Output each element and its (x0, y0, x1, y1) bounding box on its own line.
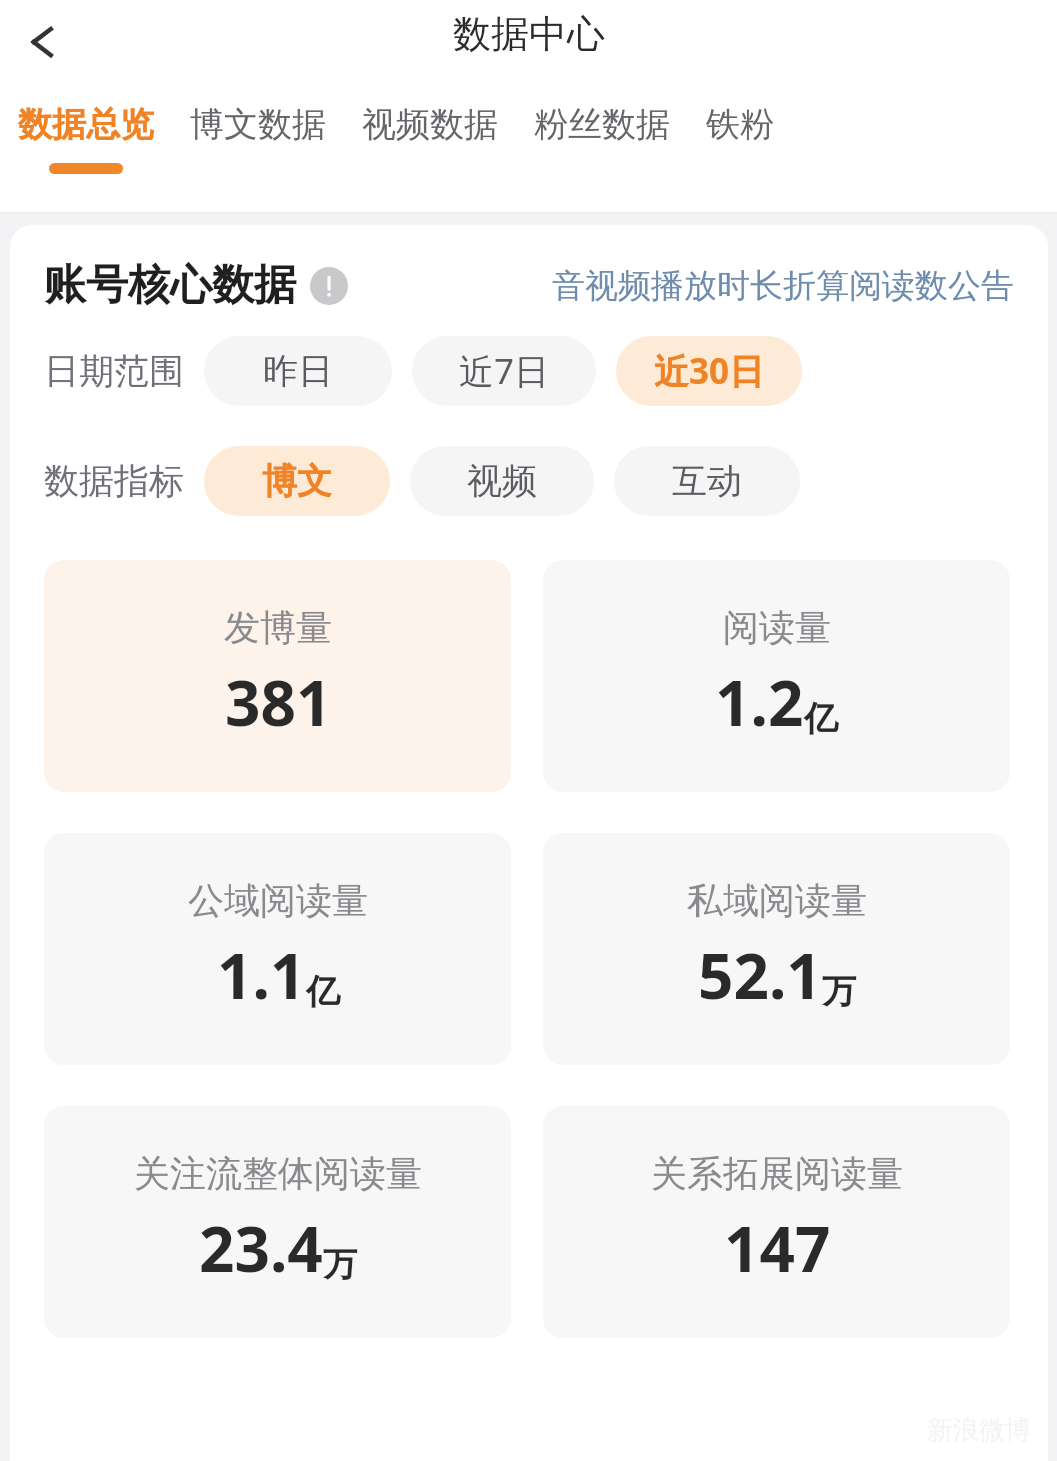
staticText: 音视频播放时长折算阅读数公告 (552, 265, 1014, 307)
staticText: 1.2 (715, 660, 804, 744)
button[interactable]: 粉丝数据 (534, 76, 670, 163)
button[interactable]: 博文数据 (190, 76, 326, 163)
staticText: 近7日 (459, 347, 550, 395)
button[interactable]: 视频 (410, 446, 594, 516)
button[interactable]: 近30日 (616, 336, 802, 406)
staticText: 近30日 (654, 347, 765, 395)
button[interactable]: 私域阅读量 (543, 833, 1010, 1065)
staticText: 粉丝数据 (534, 103, 670, 146)
button[interactable]: 昨日 (204, 336, 392, 406)
staticText: 147 (724, 1206, 831, 1290)
staticText: 账号核心数据 (44, 259, 296, 312)
staticText: 发博量 (224, 605, 332, 650)
button[interactable]: 发博量 (44, 560, 511, 792)
staticText: 亿 (306, 970, 340, 1013)
button[interactable]: 视频数据 (362, 76, 498, 163)
staticText: 互动 (672, 459, 742, 503)
staticText: 数据指标 (44, 459, 184, 503)
staticText: 381 (225, 660, 332, 744)
button[interactable]: 关注流整体阅读量 (44, 1106, 511, 1338)
button[interactable]: 音视频播放时长折算阅读数公告 (552, 265, 1014, 307)
staticText: 数据总览 (18, 103, 154, 146)
button[interactable]: 公域阅读量 (44, 833, 511, 1065)
staticText: 1.1 (217, 933, 306, 1017)
button[interactable]: 数据总览 (18, 76, 154, 174)
button[interactable]: 近7日 (412, 336, 596, 406)
staticText: 52.1 (698, 933, 822, 1017)
staticText: 关注流整体阅读量 (134, 1151, 422, 1196)
button[interactable]: Back (8, 7, 70, 69)
button[interactable]: 铁粉 (706, 76, 774, 163)
staticText: 关系拓展阅读量 (651, 1151, 903, 1196)
staticText: 视频数据 (362, 103, 498, 146)
button[interactable]: 博文 (204, 446, 390, 516)
staticText: 博文 (262, 459, 332, 503)
staticText: 公域阅读量 (188, 878, 368, 923)
staticText: 数据中心 (453, 10, 605, 58)
staticText: 万 (323, 1243, 357, 1286)
staticText: 视频 (467, 459, 537, 503)
staticText: 博文数据 (190, 103, 326, 146)
button[interactable]: Info (310, 267, 348, 305)
button[interactable]: 关系拓展阅读量 (543, 1106, 1010, 1338)
staticText: 私域阅读量 (687, 878, 867, 923)
staticText: 23.4 (199, 1206, 323, 1290)
staticText: 亿 (804, 697, 838, 740)
staticText: 阅读量 (723, 605, 831, 650)
button[interactable]: 阅读量 (543, 560, 1010, 792)
staticText: 万 (822, 970, 856, 1013)
staticText: 铁粉 (706, 103, 774, 146)
staticText: 昨日 (263, 349, 333, 393)
staticText: 新浪微博 (927, 1414, 1031, 1447)
staticText: 日期范围 (44, 349, 184, 393)
button[interactable]: 互动 (614, 446, 800, 516)
